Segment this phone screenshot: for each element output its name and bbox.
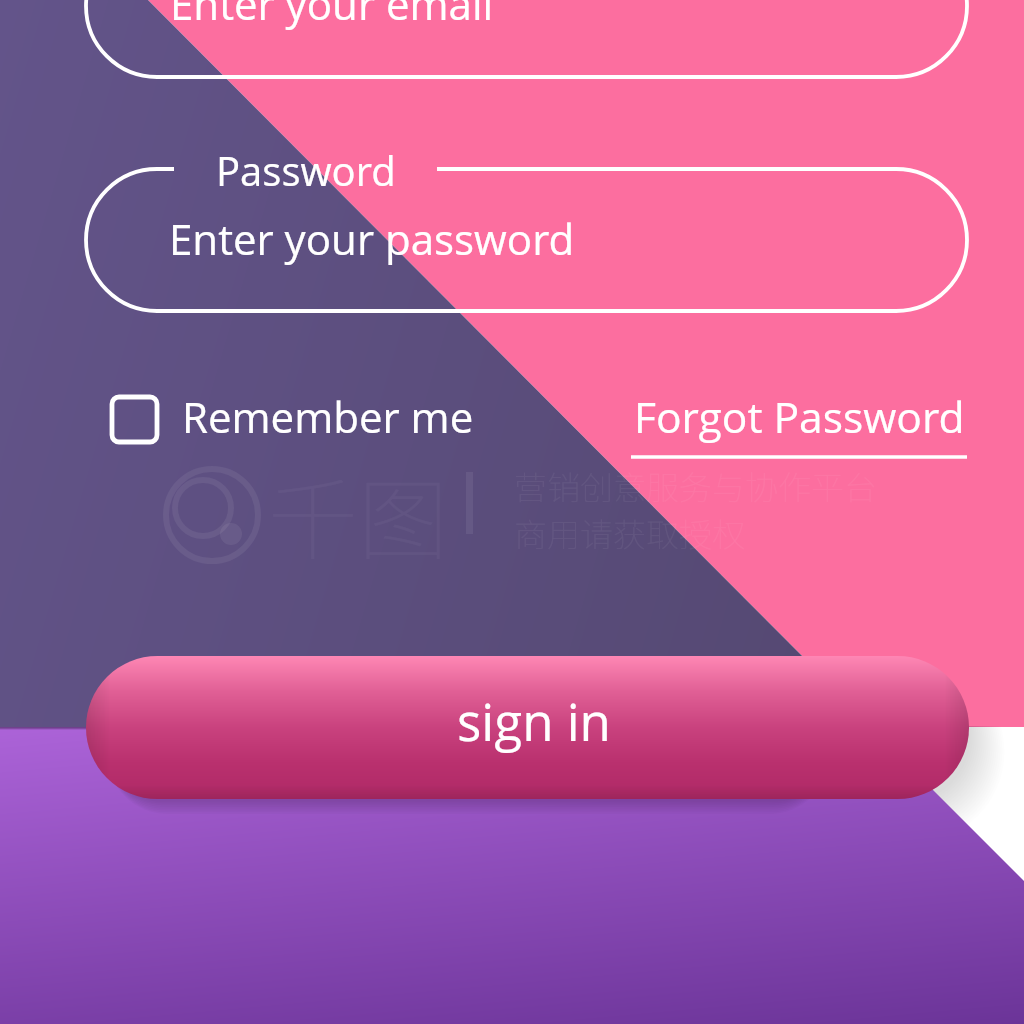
button[interactable]: sign in bbox=[86, 656, 969, 799]
button[interactable]: Password field bbox=[86, 169, 967, 311]
button[interactable]: Remember me bbox=[168, 385, 478, 453]
button[interactable]: Forgot Password bbox=[625, 390, 975, 465]
button[interactable]: Email address field bbox=[86, 0, 967, 77]
button[interactable]: Remember me checkbox bbox=[100, 385, 168, 453]
